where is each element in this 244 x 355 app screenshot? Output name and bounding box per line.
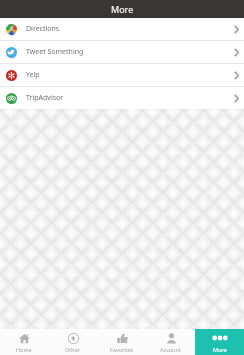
staticText: More [213,346,227,353]
staticText: TripAdvisor [26,93,64,103]
staticText: Account [160,346,181,353]
button[interactable]: Account [146,329,195,355]
staticText: Home [16,346,32,353]
staticText: More [111,3,134,15]
button[interactable]: TripAdvisor [0,87,244,109]
button[interactable]: Home [0,329,48,355]
button[interactable]: Yelp [0,64,244,86]
staticText: Directions [26,24,60,34]
button[interactable]: More [195,329,244,355]
button[interactable]: Tweet Something [0,41,244,63]
staticText: Tweet Something [26,47,84,57]
button[interactable]: Directions [0,18,244,40]
staticText: Favorites [110,346,134,353]
staticText: Other [65,346,81,353]
staticText: Yelp [26,70,40,80]
button[interactable]: Favorites [97,329,146,355]
button[interactable]: Other [48,329,97,355]
